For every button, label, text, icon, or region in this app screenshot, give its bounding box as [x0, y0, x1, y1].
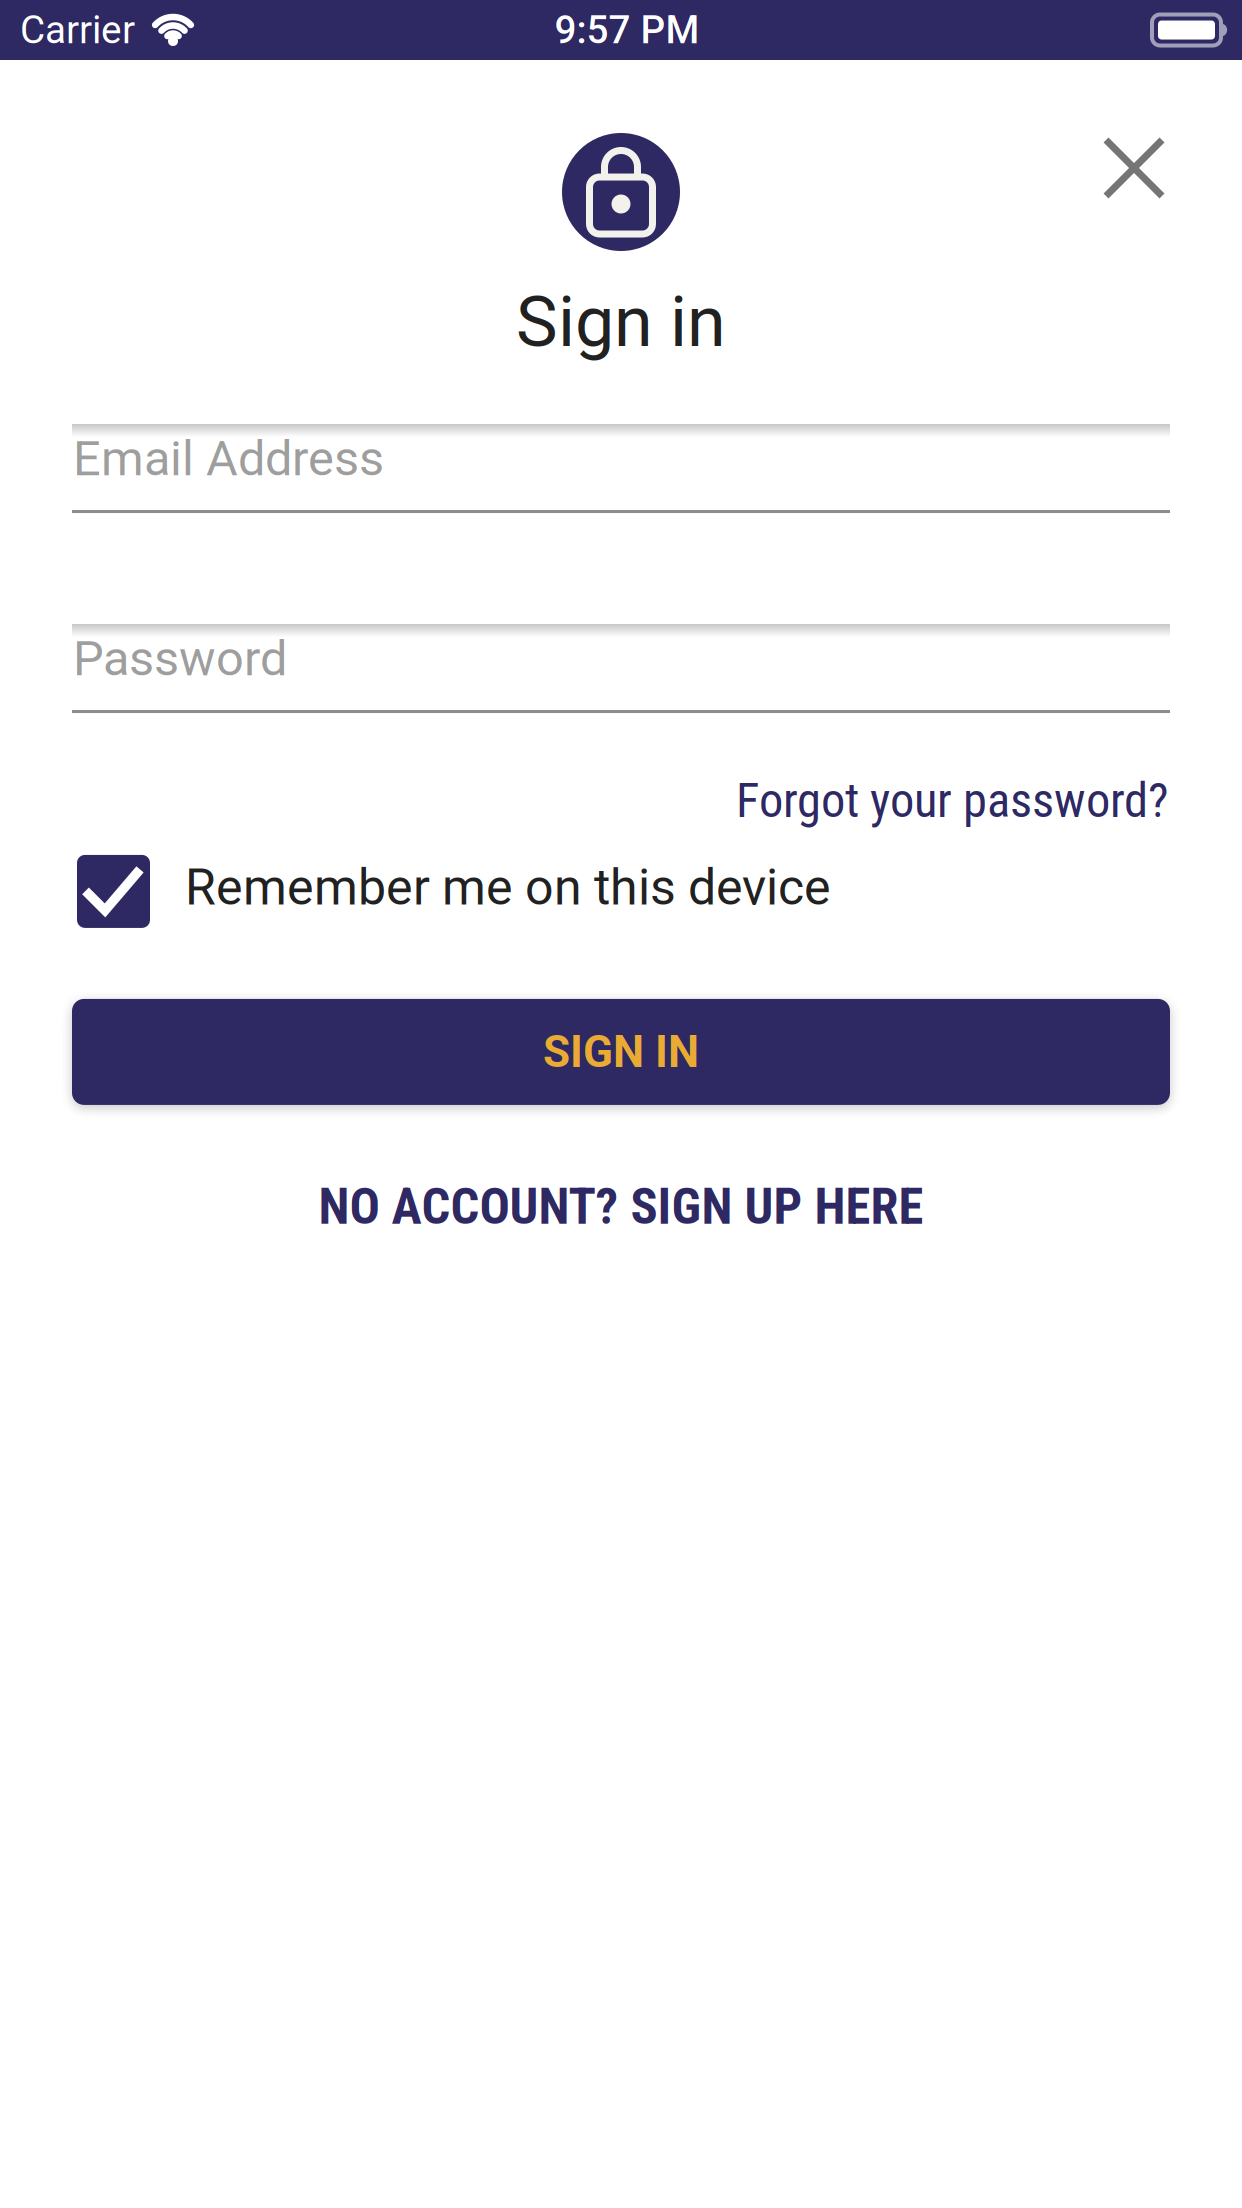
button[interactable]: Remember me on this device [0, 855, 1242, 928]
staticText: Forgot your password? [736, 772, 1168, 829]
staticText: SIGN IN [543, 1026, 699, 1078]
button[interactable] [1106, 140, 1162, 196]
staticText: NO ACCOUNT? SIGN UP HERE [318, 1177, 923, 1236]
button[interactable]: SIGN IN [72, 999, 1170, 1105]
button[interactable]: Forgot your password? [736, 772, 1168, 829]
button[interactable]: Email Address [72, 424, 1170, 513]
button[interactable]: NO ACCOUNT? SIGN UP HERE [318, 1177, 923, 1236]
staticText: Remember me on this device [185, 858, 831, 917]
staticText: Carrier [20, 7, 135, 53]
staticText: Sign in [516, 281, 726, 363]
staticText: Email Address [73, 430, 384, 487]
staticText: Password [73, 630, 287, 687]
staticText: 9:57 PM [554, 7, 699, 53]
button[interactable]: Password [72, 624, 1170, 713]
